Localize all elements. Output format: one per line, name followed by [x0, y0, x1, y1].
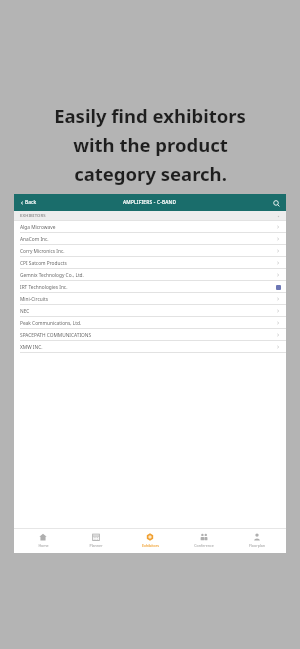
- button[interactable]: Alga Microwave: [14, 221, 286, 233]
- staticText: AMPLIFIERS - C-BAND: [123, 199, 177, 206]
- button[interactable]: Floorplan: [232, 529, 282, 553]
- staticText: Gemnix Technology Co., Ltd.: [20, 272, 84, 279]
- staticText: Easily find exhibitors: [54, 103, 246, 128]
- staticText: Peak Communications, Ltd.: [20, 320, 82, 327]
- button[interactable]: IRT Technologies Inc.: [14, 281, 286, 293]
- staticText: Corry Micronics Inc.: [20, 248, 65, 255]
- staticText: Home: [38, 543, 49, 548]
- button[interactable]: Exhibitors: [125, 529, 175, 553]
- button[interactable]: Peak Communications, Ltd.: [14, 317, 286, 329]
- staticText: Exhibitors: [142, 543, 159, 548]
- staticText: with the product: [73, 132, 228, 157]
- staticText: IRT Technologies Inc.: [20, 284, 68, 291]
- staticText: Conference: [194, 543, 214, 548]
- staticText: category search.: [74, 161, 227, 186]
- button[interactable]: Back: [18, 197, 39, 208]
- staticText: EXHIBITORS: [20, 213, 46, 219]
- staticText: NEC: [20, 308, 30, 315]
- button[interactable]: Gemnix Technology Co., Ltd.: [14, 269, 286, 281]
- button[interactable]: Mini-Circuits: [14, 293, 286, 305]
- staticText: CPI Satcom Products: [20, 260, 67, 267]
- staticText: SPACEPATH COMMUNICATIONS: [20, 332, 92, 339]
- button[interactable]: XMW INC.: [14, 341, 286, 353]
- staticText: Alga Microwave: [20, 224, 56, 231]
- button[interactable]: Search: [270, 197, 282, 209]
- button[interactable]: Home: [18, 529, 68, 553]
- button[interactable]: NEC: [14, 305, 286, 317]
- button[interactable]: SPACEPATH COMMUNICATIONS: [14, 329, 286, 341]
- staticText: Floorplan: [249, 543, 265, 548]
- staticText: XMW INC.: [20, 344, 43, 351]
- button[interactable]: Corry Micronics Inc.: [14, 245, 286, 257]
- staticText: Mini-Circuits: [20, 296, 49, 303]
- button[interactable]: AnaCom Inc.: [14, 233, 286, 245]
- button[interactable]: Planner: [71, 529, 121, 553]
- staticText: Back: [25, 199, 37, 206]
- button[interactable]: CPI Satcom Products: [14, 257, 286, 269]
- button[interactable]: Conference: [179, 529, 229, 553]
- staticText: Planner: [89, 543, 103, 548]
- staticText: AnaCom Inc.: [20, 236, 49, 243]
